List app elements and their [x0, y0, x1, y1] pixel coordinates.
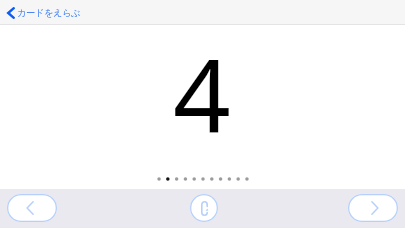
button[interactable]: やりなおす	[190, 194, 218, 222]
button[interactable]: 前のカード	[7, 194, 57, 222]
button[interactable]: 次のカード	[348, 194, 398, 222]
staticText: カードをえらぶ	[17, 7, 81, 19]
button[interactable]: カードをえらぶ	[0, 4, 87, 22]
staticText: 4	[173, 24, 231, 162]
